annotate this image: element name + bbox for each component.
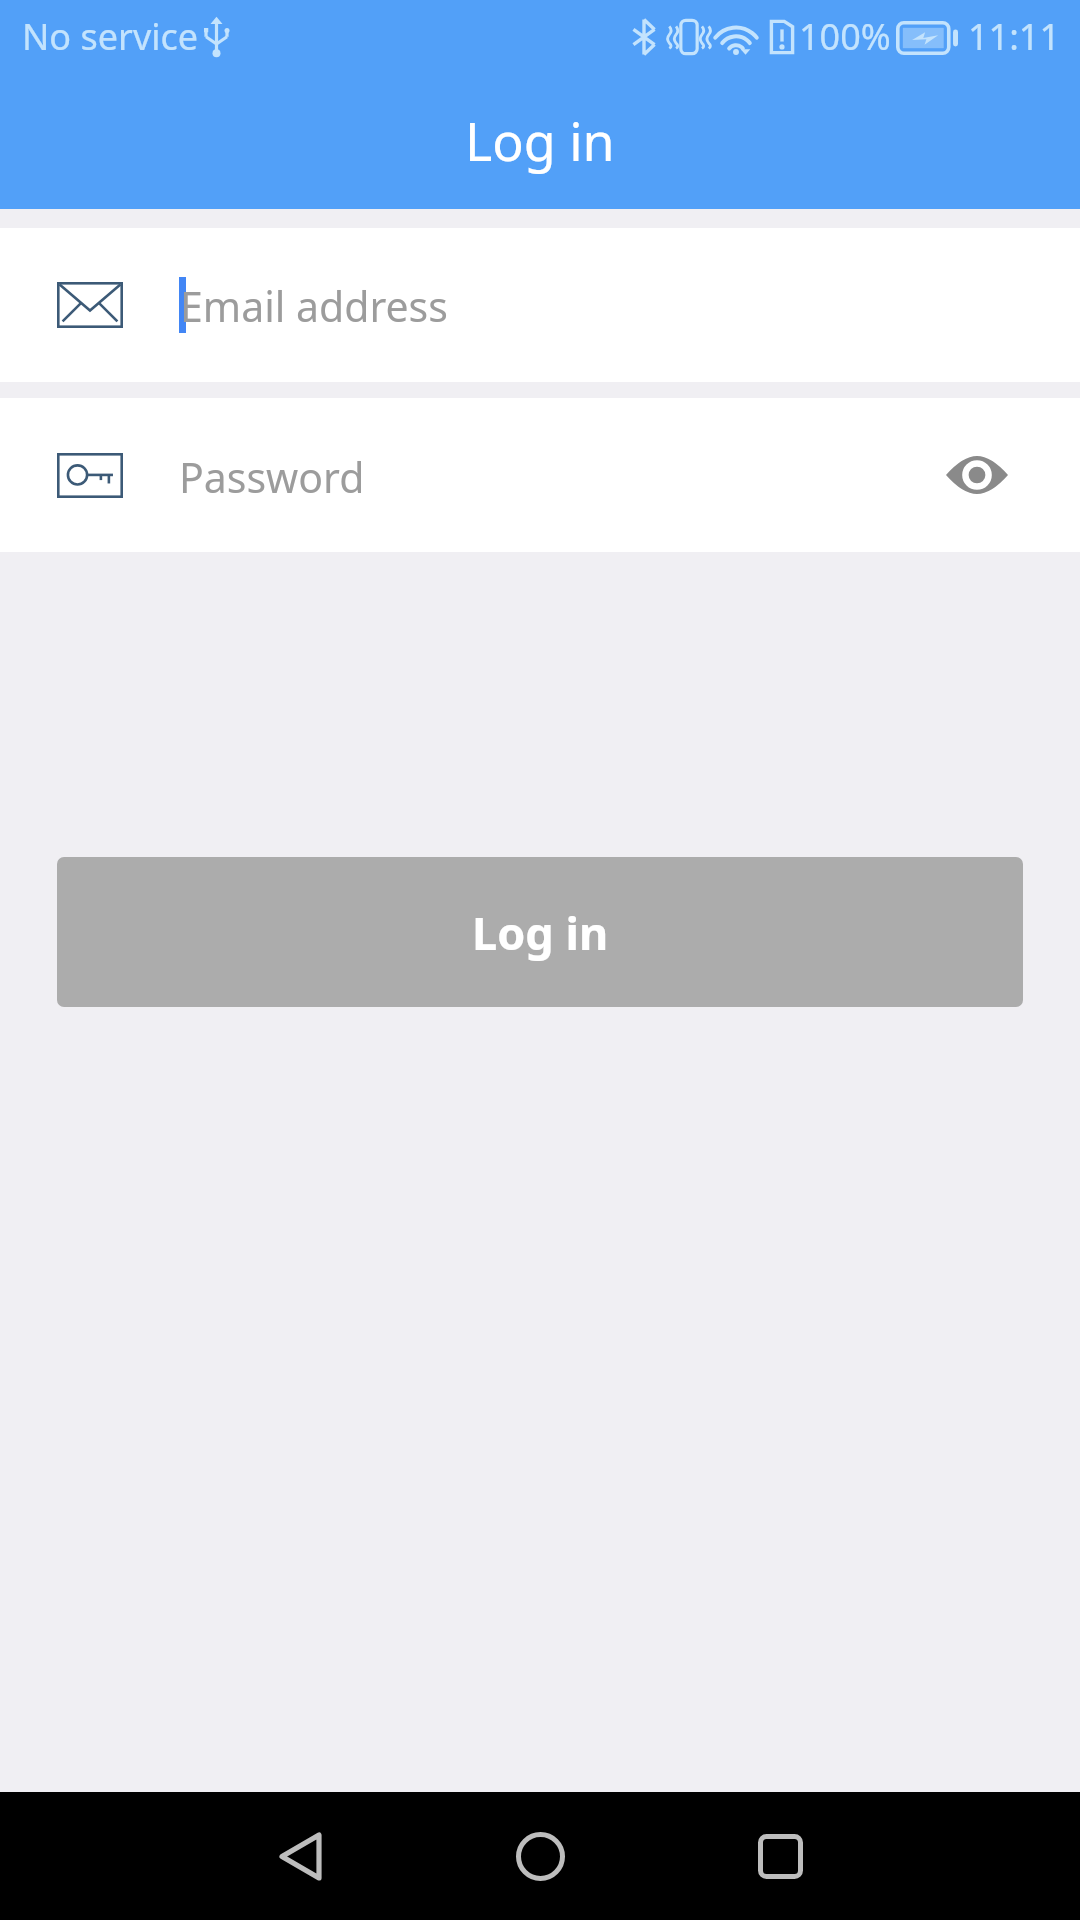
staticText: No service — [22, 12, 199, 61]
staticText: 100% — [799, 12, 891, 61]
button[interactable]: Back — [240, 1792, 360, 1920]
button[interactable]: Show password — [912, 398, 1042, 552]
staticText: Log in — [465, 105, 615, 176]
staticText: Password — [179, 449, 365, 505]
button[interactable]: Password — [0, 398, 1080, 552]
staticText: 11:11 — [968, 12, 1061, 61]
button[interactable]: Email address — [0, 228, 1080, 382]
staticText: Log in — [472, 902, 609, 963]
staticText: Email address — [180, 278, 448, 334]
button[interactable]: Log in — [57, 857, 1023, 1007]
button[interactable]: Recents — [720, 1792, 840, 1920]
button[interactable]: Home — [480, 1792, 600, 1920]
